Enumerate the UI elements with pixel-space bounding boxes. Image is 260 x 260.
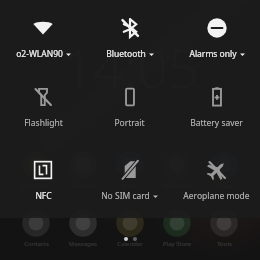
staticText: Aeroplane mode — [183, 190, 250, 202]
button[interactable]: Aeroplane mode — [173, 151, 260, 208]
other: Portrait — [117, 84, 143, 110]
button[interactable]: Flashlight — [0, 78, 86, 135]
staticText: Calendar — [117, 240, 143, 248]
staticText: Messages — [69, 240, 97, 248]
staticText: NFC — [35, 190, 52, 202]
staticText: o2-WLAN90 — [16, 48, 63, 60]
button[interactable]: NFC — [0, 151, 86, 208]
staticText: Flashlight — [24, 117, 63, 129]
staticText: Tools — [217, 240, 232, 248]
staticText: No SIM card — [101, 190, 150, 202]
other: Alarms only — [204, 15, 230, 41]
other: No SIM card — [117, 157, 143, 183]
other: Aeroplane mode — [204, 157, 230, 183]
staticText: Play Store — [163, 240, 191, 248]
button[interactable]: o2-WLAN90 — [0, 9, 86, 66]
other: Bluetooth — [117, 15, 143, 41]
other: Flashlight — [30, 84, 56, 110]
other: o2-WLAN90 — [30, 15, 56, 41]
button[interactable]: No SIM card — [86, 151, 173, 208]
button[interactable]: Bluetooth — [86, 9, 173, 66]
button[interactable]: Portrait — [86, 78, 173, 135]
staticText: Bluetooth — [106, 48, 146, 60]
staticText: Battery saver — [190, 117, 243, 129]
button[interactable]: Alarms only — [173, 9, 260, 66]
staticText: Contacts — [24, 240, 49, 248]
other: Battery saver — [204, 84, 230, 110]
staticText: Portrait — [114, 117, 145, 129]
staticText: 14:05 — [62, 30, 199, 104]
other: NFC — [30, 157, 56, 183]
staticText: Alarms only — [189, 48, 237, 60]
button[interactable]: Battery saver — [173, 78, 260, 135]
